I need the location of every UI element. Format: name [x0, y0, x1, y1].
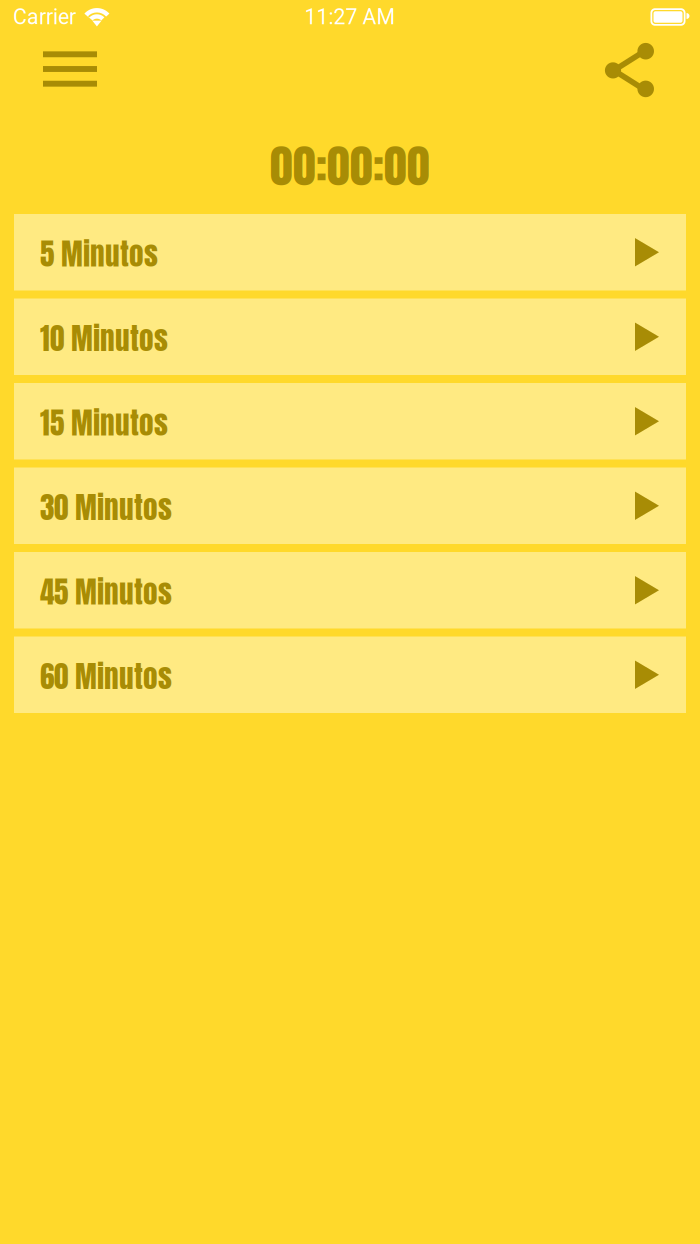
staticText: 45 Minutos	[40, 570, 172, 614]
button[interactable]: 60 Minutos	[14, 636, 686, 713]
button[interactable]: 10 Minutos	[14, 298, 686, 375]
staticText: 60 Minutos	[40, 655, 172, 699]
button[interactable]: 45 Minutos	[14, 552, 686, 628]
button[interactable]: 5 Minutos	[14, 214, 686, 290]
staticText: 15 Minutos	[40, 401, 168, 445]
button[interactable]: Menu	[22, 34, 118, 102]
button[interactable]: 15 Minutos	[14, 383, 686, 459]
staticText: 00:00:00	[270, 132, 430, 200]
button[interactable]: 30 Minutos	[14, 467, 686, 544]
button[interactable]: Share	[581, 34, 677, 102]
staticText: Carrier	[13, 4, 76, 29]
staticText: 11:27 AM	[304, 4, 395, 29]
staticText: 30 Minutos	[40, 486, 172, 530]
staticText: 10 Minutos	[40, 317, 168, 361]
staticText: 5 Minutos	[40, 232, 158, 276]
